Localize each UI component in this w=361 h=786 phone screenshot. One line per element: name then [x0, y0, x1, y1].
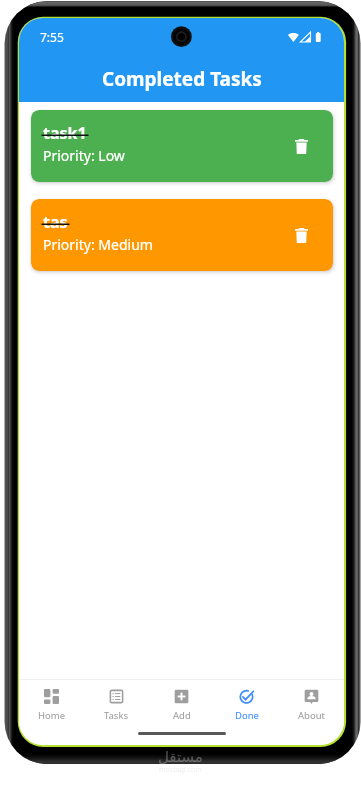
staticText: Done [235, 709, 259, 722]
staticText: Home [38, 709, 66, 722]
button[interactable]: Delete task [287, 221, 315, 249]
staticText: Priority: Medium [43, 235, 153, 254]
button[interactable]: About [279, 689, 344, 722]
staticText: About [298, 709, 325, 722]
button[interactable]: Delete task [287, 132, 315, 160]
button[interactable]: Home [19, 689, 84, 722]
staticText: مستقل [158, 748, 203, 765]
staticText: tas [43, 211, 68, 233]
button[interactable]: tas [31, 199, 333, 271]
button[interactable]: task1 [31, 110, 333, 182]
staticText: Priority: Low [43, 146, 125, 165]
staticText: Completed Tasks [102, 66, 262, 92]
staticText: task1 [43, 122, 87, 144]
staticText: Add [173, 709, 191, 722]
button[interactable]: Tasks [84, 689, 149, 722]
button[interactable]: Add [149, 689, 214, 722]
button[interactable]: Done [214, 689, 279, 722]
staticText: mostaql.com [159, 765, 202, 775]
staticText: Tasks [104, 709, 129, 722]
staticText: 7:55 [40, 29, 64, 45]
